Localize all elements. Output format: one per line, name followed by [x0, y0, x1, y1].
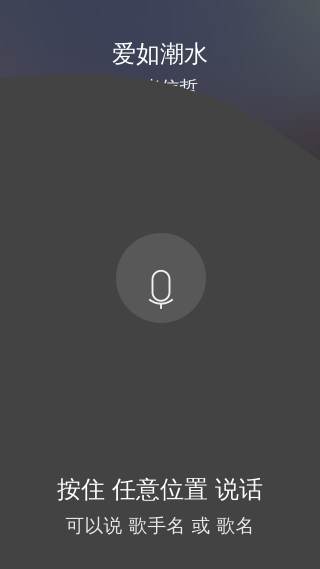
button[interactable]: Hold to speak — [116, 233, 206, 323]
staticText: 爱如潮水 — [112, 39, 208, 69]
staticText: 按住 任意位置 说话 — [57, 475, 263, 504]
staticText: 可以说 歌手名 或 歌名 — [65, 514, 254, 537]
staticText: 张信哲 — [141, 76, 198, 99]
